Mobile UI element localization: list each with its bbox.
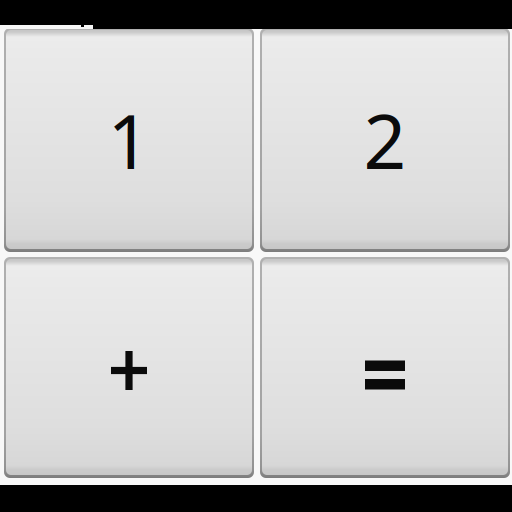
staticText: 1 [107,90,150,190]
button[interactable]: 1 [4,28,254,252]
button[interactable]: 2 [260,28,510,252]
staticText: 2 [363,90,406,190]
button[interactable]: Equals [260,257,510,478]
button[interactable]: Plus [4,257,254,478]
